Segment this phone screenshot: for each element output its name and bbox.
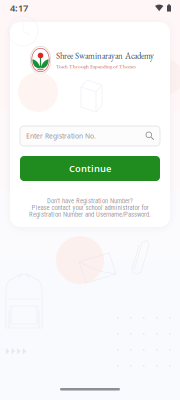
staticText: Shree Swaminarayan Academy bbox=[56, 50, 154, 61]
staticText: Continue bbox=[69, 162, 111, 175]
staticText: Don't have Registration Number? bbox=[47, 197, 133, 205]
button[interactable]: Continue bbox=[20, 156, 160, 181]
staticText: 4:17 bbox=[10, 2, 28, 14]
staticText: Teach Through Expanding of Themes bbox=[56, 63, 136, 70]
staticText: Please contact your school administrator… bbox=[31, 204, 148, 212]
staticText: Enter Registration No. bbox=[26, 132, 96, 140]
staticText: Registration Number and Username/Passwor… bbox=[29, 211, 151, 218]
